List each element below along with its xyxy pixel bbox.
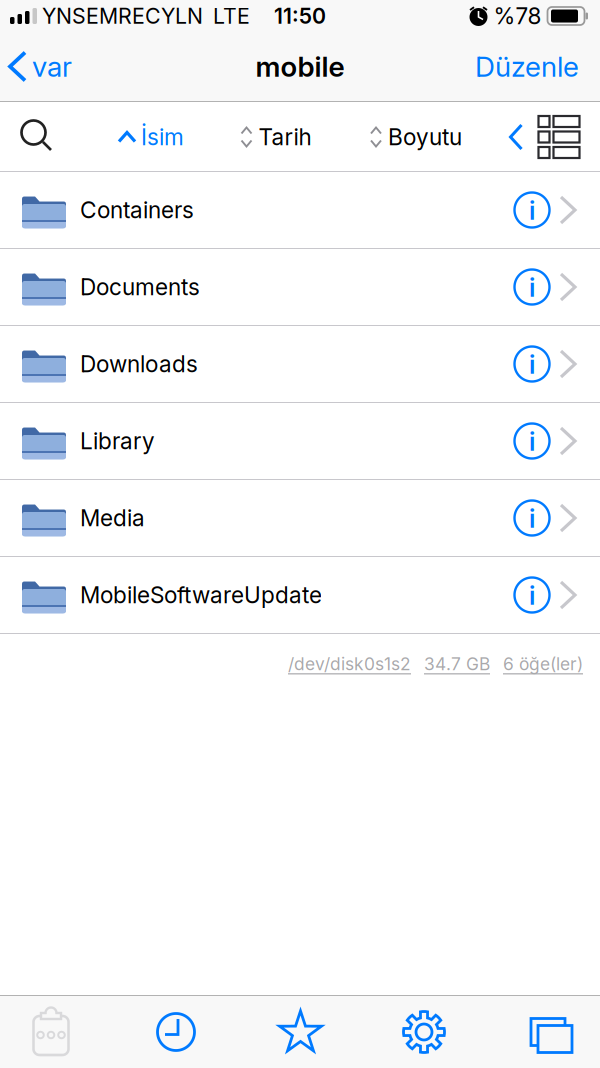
button[interactable]: Info bbox=[514, 577, 550, 613]
button[interactable]: Search bbox=[20, 119, 56, 155]
staticText: Media bbox=[80, 505, 145, 531]
staticText: YNSEMRECYLN bbox=[42, 3, 203, 29]
staticText: %78 bbox=[493, 3, 541, 29]
staticText: Düzenle bbox=[475, 50, 579, 83]
staticText: var bbox=[32, 50, 72, 83]
button[interactable]: Documents bbox=[0, 249, 600, 325]
staticText: İsim bbox=[141, 124, 184, 150]
button[interactable]: Info bbox=[514, 500, 550, 536]
staticText: i bbox=[529, 196, 535, 225]
staticText: LTE bbox=[213, 3, 250, 29]
staticText: Tarih bbox=[258, 124, 311, 150]
staticText: 34.7 GB bbox=[424, 654, 490, 674]
button[interactable]: Tarih bbox=[241, 124, 311, 150]
button[interactable]: Favorites bbox=[255, 996, 345, 1068]
staticText: Downloads bbox=[80, 351, 198, 377]
button[interactable]: Clipboard bbox=[6, 996, 96, 1068]
staticText: i bbox=[529, 427, 535, 456]
staticText: mobile bbox=[255, 50, 344, 83]
staticText: Boyutu bbox=[388, 124, 462, 150]
button[interactable]: Boyutu bbox=[371, 124, 462, 150]
button[interactable]: Info bbox=[514, 423, 550, 459]
button[interactable]: Settings bbox=[379, 996, 469, 1068]
button[interactable]: Containers bbox=[0, 172, 600, 248]
button[interactable]: Düzenle bbox=[475, 50, 600, 83]
button[interactable]: Downloads bbox=[0, 326, 600, 402]
button[interactable]: var bbox=[0, 50, 72, 83]
button[interactable]: Collapse bbox=[510, 125, 521, 149]
button[interactable]: Info bbox=[514, 269, 550, 305]
staticText: /dev/disk0s1s2 bbox=[288, 654, 411, 674]
button[interactable]: Info bbox=[514, 192, 550, 228]
button[interactable]: MobileSoftwareUpdate bbox=[0, 557, 600, 633]
staticText: MobileSoftwareUpdate bbox=[80, 582, 322, 608]
button[interactable]: Info bbox=[514, 346, 550, 382]
staticText: i bbox=[529, 504, 535, 533]
staticText: Library bbox=[80, 428, 155, 454]
staticText: i bbox=[529, 273, 535, 302]
button[interactable]: İsim bbox=[119, 124, 184, 150]
staticText: i bbox=[529, 581, 535, 610]
staticText: i bbox=[529, 350, 535, 379]
staticText: 11:50 bbox=[274, 3, 326, 29]
staticText: 6 öğe(ler) bbox=[503, 654, 583, 674]
button[interactable]: Library bbox=[0, 403, 600, 479]
staticText: Containers bbox=[80, 197, 194, 223]
button[interactable]: View options bbox=[538, 116, 579, 158]
button[interactable]: Media bbox=[0, 480, 600, 556]
button[interactable]: Tabs bbox=[503, 996, 593, 1068]
button[interactable]: Recent bbox=[131, 996, 221, 1068]
staticText: Documents bbox=[80, 274, 200, 300]
